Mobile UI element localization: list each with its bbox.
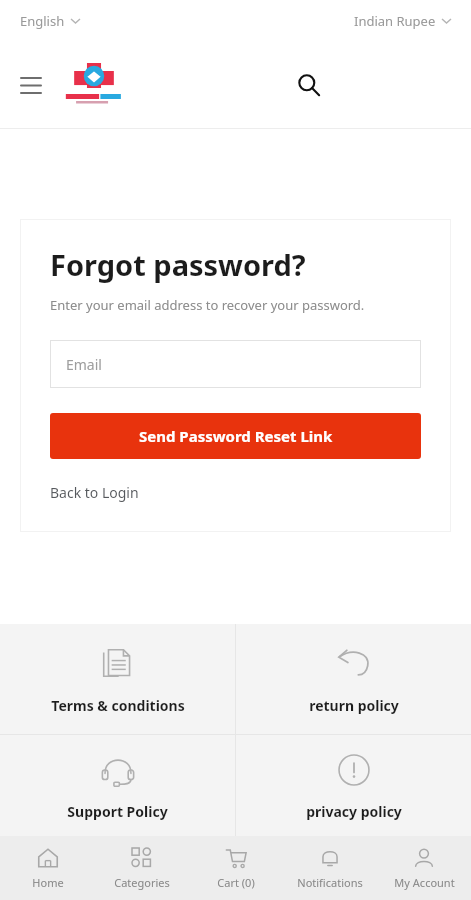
button[interactable]: Notifications [283,836,377,900]
staticText: Support Policy [67,802,168,821]
button[interactable]: English [20,12,84,30]
staticText: Enter your email address to recover your… [50,296,365,314]
staticText: Home [32,875,64,890]
button[interactable]: Global Health Kart logo [62,60,126,110]
button[interactable]: Terms & conditions [0,624,235,734]
staticText: English [20,12,65,30]
button[interactable]: Menu [14,68,48,102]
staticText: Email [66,355,102,374]
staticText: Categories [114,875,170,890]
staticText: Send Password Reset Link [139,426,333,446]
button[interactable]: My Account [377,836,471,900]
button[interactable]: return policy [236,624,471,734]
staticText: Indian Rupee [354,12,436,30]
staticText: Notifications [297,875,363,890]
button[interactable]: Back to Login [50,479,139,506]
button[interactable]: Categories [95,836,189,900]
staticText: return policy [309,696,399,715]
staticText: Terms & conditions [51,696,185,715]
button[interactable]: Send Password Reset Link [50,413,421,459]
button[interactable]: Indian Rupee [350,12,451,30]
staticText: My Account [394,875,455,890]
staticText: Back to Login [50,483,139,502]
button[interactable]: privacy policy [236,735,471,836]
button[interactable]: Email [50,340,421,388]
button[interactable]: Cart (0) [189,836,283,900]
button[interactable]: Support Policy [0,735,235,836]
staticText: privacy policy [306,802,402,821]
staticText: Cart (0) [217,875,255,890]
button[interactable]: Home [0,836,95,900]
staticText: Forgot password? [50,245,306,284]
button[interactable]: Search [290,66,328,104]
